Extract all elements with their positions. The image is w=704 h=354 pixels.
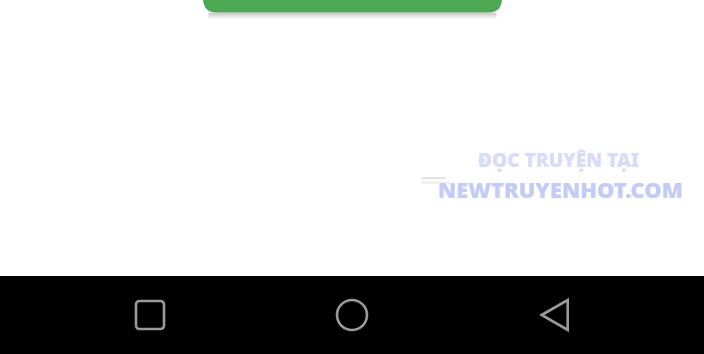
button[interactable]: Back [519, 278, 593, 352]
button[interactable]: Confirm [203, 0, 502, 13]
button[interactable]: Recent apps [113, 278, 187, 352]
button[interactable]: Home [315, 278, 389, 352]
